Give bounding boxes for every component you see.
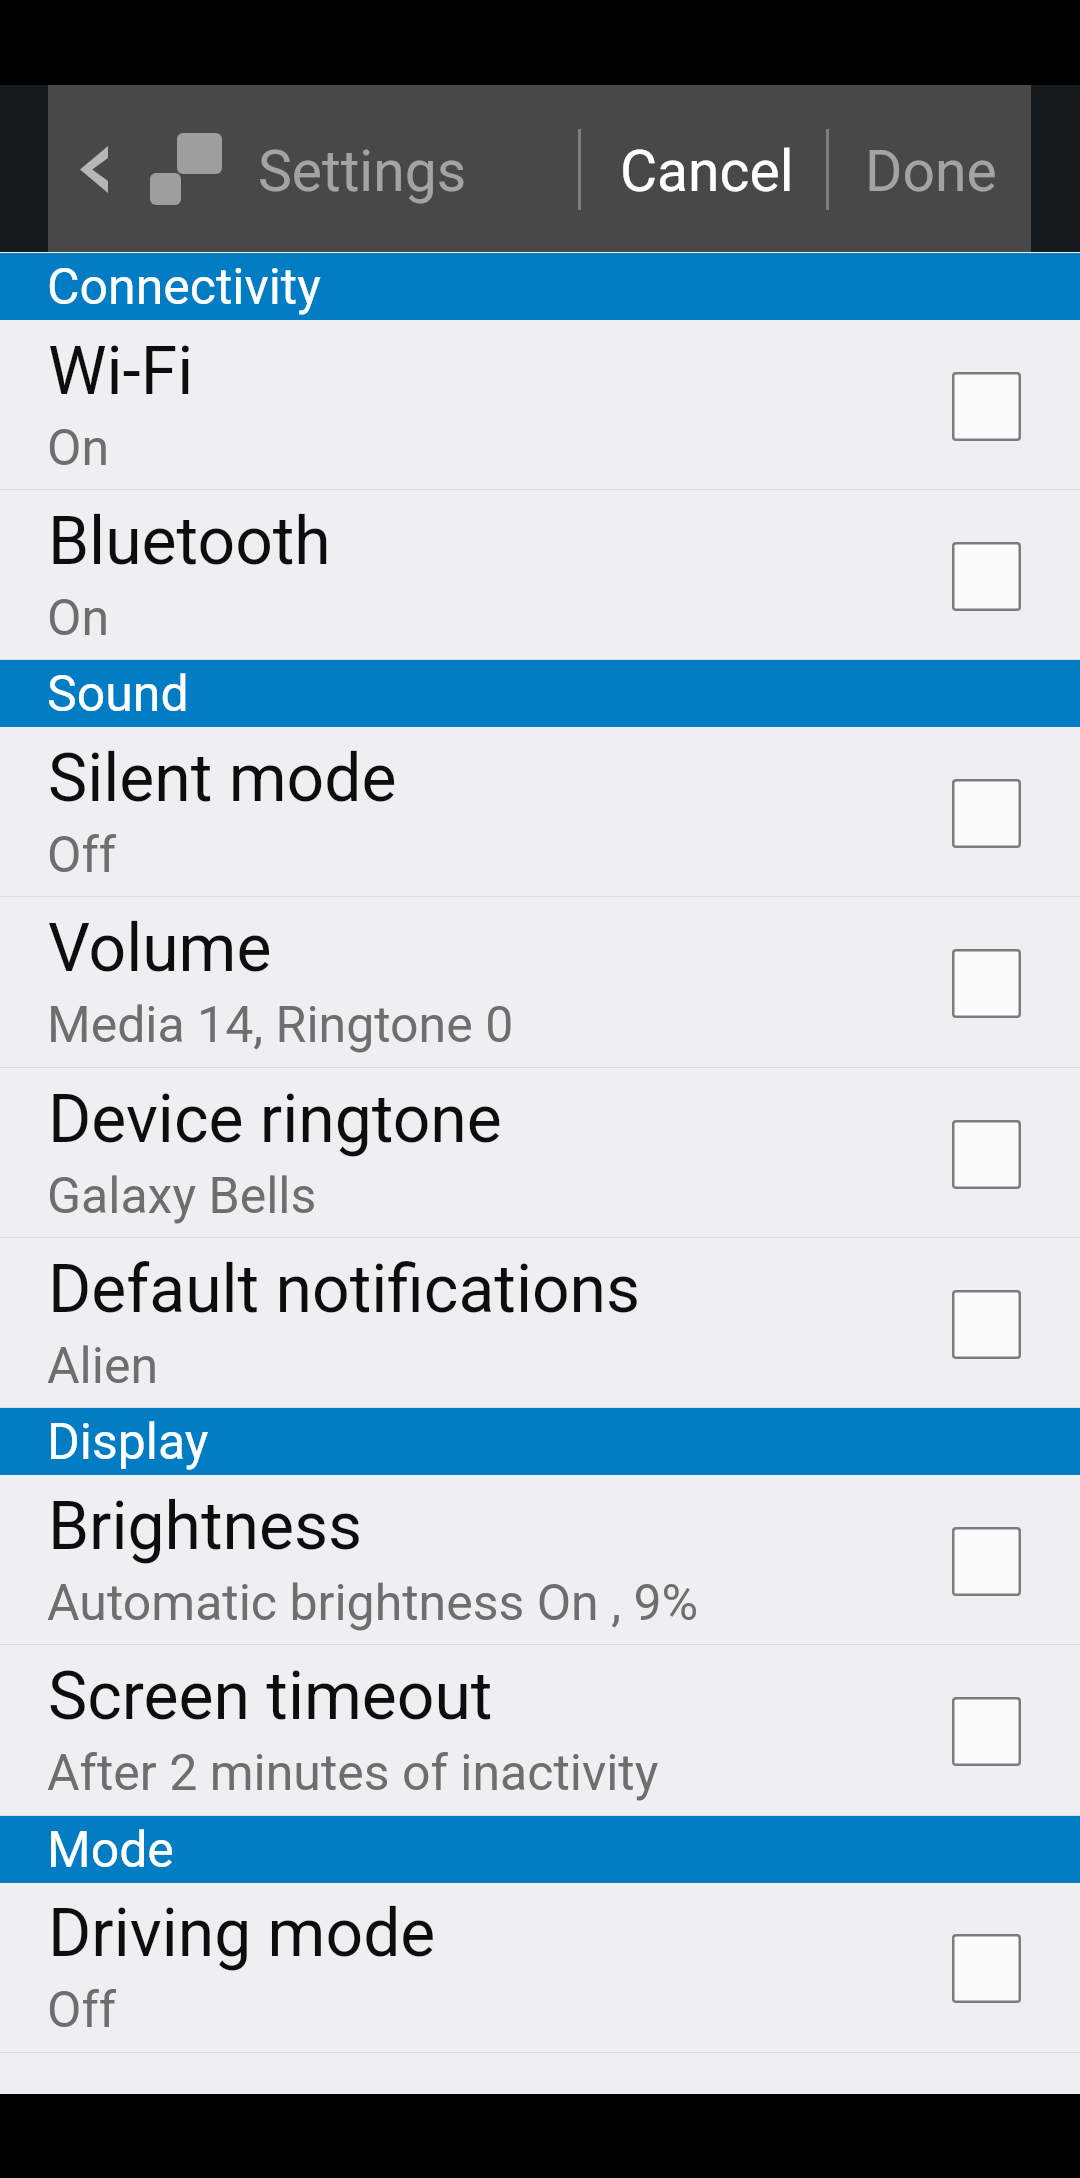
staticText: Driving mode <box>48 1895 436 1972</box>
button[interactable]: Silent mode <box>0 727 1080 897</box>
button[interactable]: Driving mode <box>0 1882 1080 2053</box>
button[interactable]: Toggle Volume <box>952 949 1021 1018</box>
button[interactable]: Toggle Bluetooth <box>952 542 1021 611</box>
staticText: After 2 minutes of inactivity <box>47 1744 659 1803</box>
staticText: Wi-Fi <box>48 333 194 410</box>
staticText: Sound <box>47 665 189 724</box>
staticText: On <box>47 589 110 648</box>
button[interactable]: Bluetooth <box>0 490 1080 660</box>
button[interactable]: Toggle Wi-Fi <box>952 372 1021 441</box>
staticText: Screen timeout <box>48 1658 493 1735</box>
button[interactable]: Toggle Brightness <box>952 1527 1021 1596</box>
button[interactable]: Default notifications <box>0 1238 1080 1408</box>
staticText: Bluetooth <box>48 503 331 580</box>
staticText: Device ringtone <box>48 1081 502 1158</box>
staticText: Default notifications <box>48 1251 641 1328</box>
staticText: Cancel <box>620 138 794 205</box>
staticText: On <box>47 419 110 478</box>
staticText: Done <box>865 138 997 205</box>
staticText: Off <box>47 1981 117 2040</box>
button[interactable]: Screen timeout <box>0 1645 1080 1816</box>
button[interactable]: Cancel <box>593 85 826 252</box>
button[interactable]: Toggle Device ringtone <box>952 1120 1021 1189</box>
staticText: Mode <box>47 1821 174 1880</box>
staticText: Silent mode <box>48 740 397 817</box>
button[interactable]: Brightness <box>0 1475 1080 1645</box>
button[interactable]: Toggle Silent mode <box>952 779 1021 848</box>
button[interactable]: Toggle Driving mode <box>952 1934 1021 2003</box>
button[interactable]: Device ringtone <box>0 1068 1080 1238</box>
staticText: Off <box>47 826 117 885</box>
button[interactable]: Wi-Fi <box>0 320 1080 490</box>
staticText: Brightness <box>48 1488 363 1565</box>
button[interactable]: Back <box>64 85 148 252</box>
button[interactable]: Toggle Screen timeout <box>952 1697 1021 1766</box>
staticText: Alien <box>47 1337 159 1396</box>
button[interactable]: Volume <box>0 897 1080 1068</box>
staticText: Automatic brightness On , 9% <box>47 1574 699 1633</box>
staticText: Connectivity <box>47 258 321 317</box>
staticText: Media 14, Ringtone 0 <box>47 996 514 1055</box>
staticText: Settings <box>258 138 467 205</box>
button[interactable]: Toggle Default notifications <box>952 1290 1021 1359</box>
staticText: Galaxy Bells <box>47 1167 317 1226</box>
button[interactable]: Done <box>838 85 1031 252</box>
staticText: Volume <box>48 910 272 987</box>
staticText: Display <box>47 1413 209 1472</box>
